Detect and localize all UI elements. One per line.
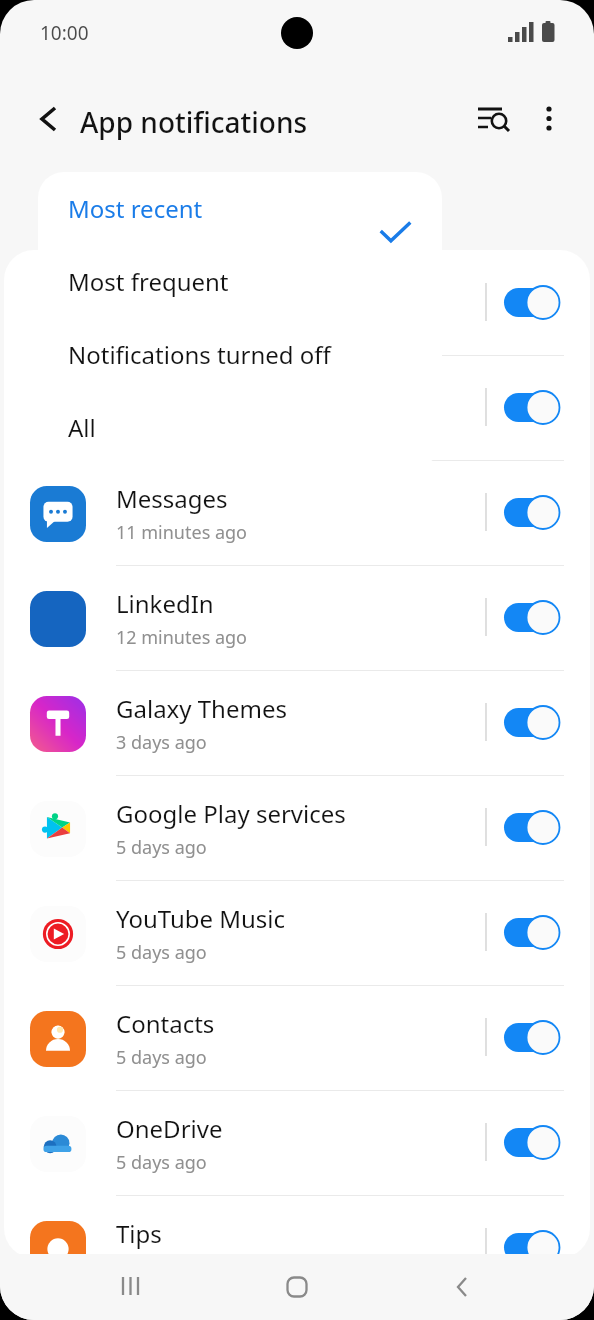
- staticText: Messages: [116, 482, 228, 515]
- button[interactable]: Toggle OneDrive: [480, 1116, 572, 1168]
- button[interactable]: Toggle: [4, 250, 590, 355]
- button[interactable]: Back: [24, 94, 74, 144]
- button[interactable]: Back: [428, 1262, 498, 1312]
- staticText: All: [68, 411, 96, 444]
- button[interactable]: Toggle Galaxy Themes: [480, 696, 572, 748]
- button[interactable]: Toggle Messages: [480, 486, 572, 538]
- staticText: 5 days ago: [116, 1150, 207, 1175]
- button[interactable]: Toggle: [4, 355, 590, 460]
- staticText: Tips: [116, 1217, 162, 1250]
- button[interactable]: LinkedIn: [4, 565, 590, 670]
- button[interactable]: Most recent: [38, 172, 442, 245]
- button[interactable]: All: [38, 391, 442, 464]
- staticText: Notifications turned off: [68, 338, 331, 371]
- button[interactable]: Galaxy Themes: [4, 670, 590, 775]
- button[interactable]: Home: [262, 1262, 332, 1312]
- button[interactable]: Toggle: [480, 276, 572, 328]
- staticText: Most frequent: [68, 265, 229, 298]
- button[interactable]: Toggle Contacts: [480, 1011, 572, 1063]
- button[interactable]: Toggle Google Play services: [480, 801, 572, 853]
- staticText: Google Play services: [116, 797, 346, 830]
- staticText: 10:00: [40, 20, 89, 46]
- staticText: Galaxy Themes: [116, 692, 287, 725]
- staticText: 3 days ago: [116, 730, 207, 755]
- button[interactable]: OneDrive: [4, 1090, 590, 1195]
- staticText: LinkedIn: [116, 587, 214, 620]
- button[interactable]: More options: [527, 96, 571, 140]
- staticText: 5 days ago: [116, 940, 207, 965]
- button[interactable]: Messages: [4, 460, 590, 565]
- button[interactable]: Notifications turned off: [38, 318, 442, 391]
- staticText: 5 days ago: [116, 1045, 207, 1070]
- button[interactable]: Toggle LinkedIn: [480, 591, 572, 643]
- button[interactable]: Toggle: [480, 381, 572, 433]
- button[interactable]: Tips: [4, 1195, 590, 1258]
- staticText: Most recent: [68, 192, 203, 225]
- staticText: App notifications: [80, 103, 308, 141]
- button[interactable]: Toggle Tips: [480, 1221, 572, 1258]
- button[interactable]: Most frequent: [38, 245, 442, 318]
- button[interactable]: Google Play services: [4, 775, 590, 880]
- button[interactable]: YouTube Music: [4, 880, 590, 985]
- staticText: 11 minutes ago: [116, 520, 248, 545]
- button[interactable]: Contacts: [4, 985, 590, 1090]
- button[interactable]: Toggle YouTube Music: [480, 906, 572, 958]
- button[interactable]: Search: [470, 96, 518, 144]
- staticText: YouTube Music: [116, 902, 286, 935]
- staticText: 12 minutes ago: [116, 625, 248, 650]
- button[interactable]: Recents: [96, 1262, 166, 1312]
- staticText: 5 days ago: [116, 835, 207, 860]
- staticText: Contacts: [116, 1007, 215, 1040]
- staticText: OneDrive: [116, 1112, 223, 1145]
